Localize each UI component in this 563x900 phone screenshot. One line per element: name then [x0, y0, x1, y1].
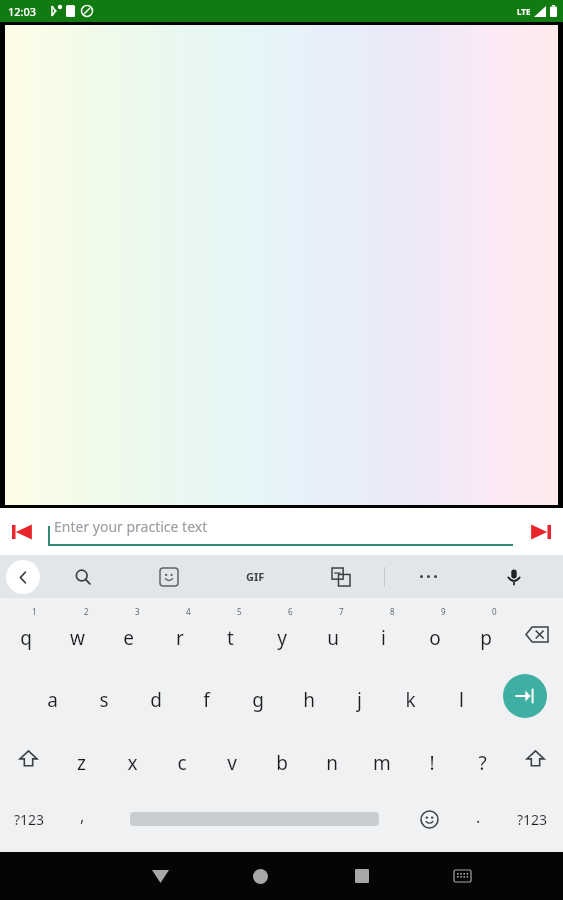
- button[interactable]: Comma: [58, 790, 106, 848]
- staticText: 3: [135, 606, 140, 617]
- button[interactable]: ?123: [501, 790, 563, 848]
- button[interactable]: Enter your practice text: [48, 517, 513, 546]
- staticText: m: [373, 750, 391, 776]
- button[interactable]: d: [130, 664, 181, 727]
- button[interactable]: k: [385, 664, 436, 727]
- button[interactable]: j: [334, 664, 385, 727]
- button[interactable]: 5: [205, 604, 256, 664]
- staticText: LTE: [517, 6, 531, 17]
- staticText: y: [277, 625, 287, 651]
- staticText: 12:03: [8, 4, 37, 19]
- staticText: e: [123, 625, 134, 651]
- button[interactable]: x: [107, 727, 157, 790]
- button[interactable]: l: [436, 664, 487, 727]
- staticText: 6: [288, 606, 293, 617]
- staticText: ?123: [14, 810, 45, 829]
- staticText: 7: [339, 606, 344, 617]
- button[interactable]: 1: [0, 604, 52, 664]
- button[interactable]: h: [283, 664, 334, 727]
- button[interactable]: Stickers: [126, 555, 212, 598]
- staticText: c: [177, 750, 187, 776]
- button[interactable]: Emoji: [403, 790, 455, 848]
- button[interactable]: More options: [385, 555, 471, 598]
- staticText: z: [77, 750, 86, 776]
- button[interactable]: b: [257, 727, 307, 790]
- staticText: l: [459, 687, 464, 713]
- button[interactable]: 6: [256, 604, 307, 664]
- button[interactable]: Enter: [487, 664, 563, 727]
- staticText: 1: [32, 606, 37, 617]
- staticText: ,: [80, 805, 85, 827]
- staticText: g: [252, 687, 264, 713]
- staticText: a: [47, 687, 58, 713]
- button[interactable]: Translate: [298, 555, 384, 598]
- button[interactable]: g: [232, 664, 283, 727]
- button[interactable]: f: [181, 664, 232, 727]
- staticText: w: [70, 625, 85, 651]
- staticText: GIF: [246, 569, 265, 584]
- button[interactable]: m: [357, 727, 407, 790]
- button[interactable]: s: [78, 664, 130, 727]
- button[interactable]: Hide keyboard: [110, 852, 210, 900]
- staticText: i: [381, 625, 386, 651]
- button[interactable]: 7: [307, 604, 358, 664]
- staticText: 5: [237, 606, 242, 617]
- button[interactable]: Search: [40, 555, 126, 598]
- staticText: r: [176, 625, 184, 651]
- staticText: b: [276, 750, 288, 776]
- staticText: 0: [492, 606, 497, 617]
- button[interactable]: Next: [519, 510, 563, 554]
- staticText: p: [480, 625, 492, 651]
- button[interactable]: ?123: [0, 790, 58, 848]
- button[interactable]: c: [157, 727, 207, 790]
- staticText: n: [326, 750, 338, 776]
- button[interactable]: 3: [103, 604, 154, 664]
- button[interactable]: Recent apps: [311, 852, 412, 900]
- staticText: j: [357, 687, 362, 713]
- button[interactable]: Shift: [0, 727, 56, 790]
- button[interactable]: Voice input: [471, 555, 557, 598]
- staticText: k: [405, 687, 416, 713]
- staticText: u: [327, 625, 339, 651]
- staticText: h: [303, 687, 315, 713]
- button[interactable]: n: [307, 727, 357, 790]
- button[interactable]: 0: [460, 604, 511, 664]
- button[interactable]: !: [407, 727, 457, 790]
- staticText: ?: [478, 750, 487, 776]
- button[interactable]: 4: [154, 604, 205, 664]
- staticText: .: [476, 806, 481, 828]
- staticText: Enter your practice text: [54, 517, 208, 536]
- button[interactable]: z: [56, 727, 107, 790]
- button[interactable]: Home: [210, 852, 311, 900]
- button[interactable]: Previous: [0, 510, 44, 554]
- button[interactable]: GIF: [212, 555, 298, 598]
- button[interactable]: Space: [106, 790, 403, 848]
- staticText: o: [429, 625, 441, 651]
- button[interactable]: ?: [457, 727, 507, 790]
- button[interactable]: v: [207, 727, 257, 790]
- staticText: 2: [84, 606, 89, 617]
- staticText: ?123: [517, 810, 548, 829]
- button[interactable]: 9: [409, 604, 460, 664]
- button[interactable]: 2: [52, 604, 103, 664]
- button[interactable]: Shift: [507, 727, 563, 790]
- button[interactable]: Back: [6, 560, 40, 594]
- staticText: x: [127, 750, 138, 776]
- staticText: t: [227, 625, 234, 651]
- button[interactable]: Switch keyboard: [412, 852, 513, 900]
- button[interactable]: Period: [455, 790, 501, 848]
- staticText: d: [150, 687, 162, 713]
- staticText: 4: [186, 606, 191, 617]
- staticText: q: [20, 625, 32, 651]
- staticText: !: [429, 750, 435, 776]
- staticText: v: [227, 750, 237, 776]
- button[interactable]: a: [26, 664, 78, 727]
- button[interactable]: Backspace: [511, 604, 563, 664]
- staticText: s: [99, 687, 109, 713]
- button[interactable]: 8: [358, 604, 409, 664]
- staticText: 9: [441, 606, 446, 617]
- staticText: f: [203, 687, 210, 713]
- staticText: 8: [390, 606, 395, 617]
